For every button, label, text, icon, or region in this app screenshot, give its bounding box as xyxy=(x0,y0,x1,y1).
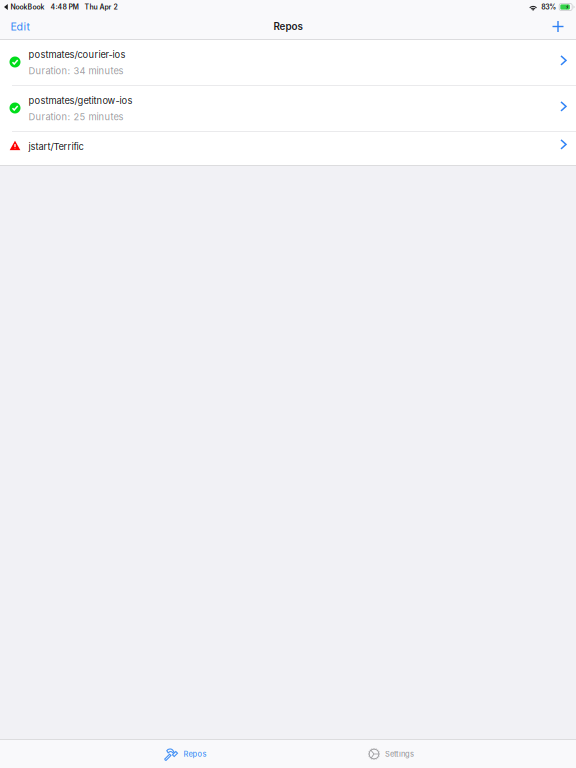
button[interactable]: postmates/courier-ios xyxy=(0,40,576,85)
staticText: 83% xyxy=(541,3,556,11)
staticText: Repos xyxy=(183,749,206,758)
button[interactable]: postmates/getitnow-ios xyxy=(0,86,576,131)
staticText: Duration: 25 minutes xyxy=(28,111,123,123)
staticText: postmates/courier-ios xyxy=(28,49,125,60)
button[interactable]: jstart/Terrific xyxy=(0,132,576,165)
staticText: postmates/getitnow-ios xyxy=(28,95,132,106)
staticText: NookBook xyxy=(10,3,44,11)
button[interactable]: Edit xyxy=(0,14,40,39)
staticText: Thu Apr 2 xyxy=(84,3,117,11)
button[interactable]: Repos xyxy=(82,740,288,768)
button[interactable]: Settings xyxy=(288,740,494,768)
staticText: Edit xyxy=(10,20,29,33)
staticText: 4:48 PM xyxy=(50,3,78,11)
staticText: jstart/Terrific xyxy=(28,141,83,152)
staticText: Repos xyxy=(273,20,302,32)
staticText: Duration: 34 minutes xyxy=(28,65,123,77)
staticText: Settings xyxy=(385,749,414,758)
button[interactable]: Add xyxy=(540,14,576,39)
